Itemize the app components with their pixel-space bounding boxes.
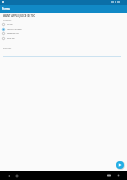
button[interactable]: Other Milk: [2, 36, 127, 41]
staticText: Forms: [2, 7, 10, 10]
staticText: Vanilla or Not Sweet: [7, 28, 22, 30]
staticText: Other Milk: [7, 37, 15, 39]
button[interactable]: Notifications: [117, 174, 120, 177]
button[interactable]: Sweetened Cold: [2, 31, 127, 36]
staticText: Price Per: [3, 47, 12, 50]
button[interactable]: Keyboard: [107, 174, 111, 177]
button[interactable]: Back: [7, 174, 11, 178]
button[interactable]: Home: [15, 174, 19, 178]
staticText: CATEGORY: [3, 19, 12, 21]
button[interactable]: Send: [116, 161, 124, 169]
button[interactable]: No Milk: [2, 22, 127, 27]
staticText: Sweetened Cold: [7, 32, 19, 34]
staticText: WANT APPLE JUICE (0) 70C: [3, 14, 36, 17]
staticText: No Milk: [7, 23, 13, 25]
button[interactable]: Vanilla or Not Sweet: [2, 27, 127, 32]
